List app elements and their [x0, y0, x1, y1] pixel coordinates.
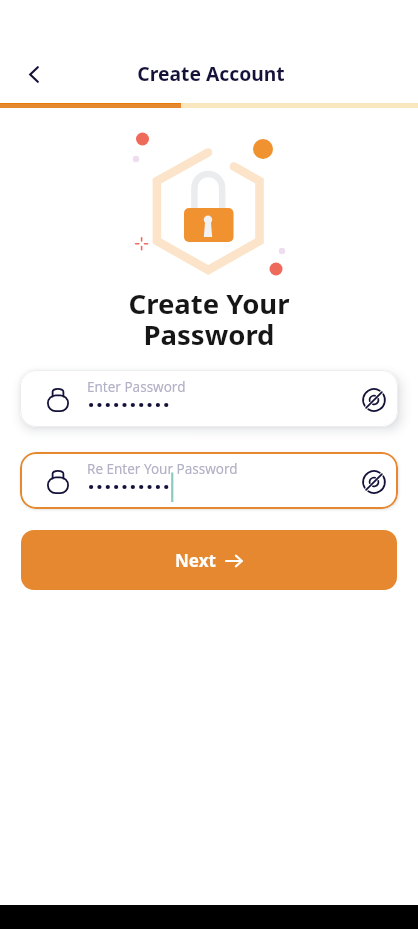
button[interactable]: Toggle password visibility [358, 466, 390, 498]
staticText: Re Enter Your Password [87, 460, 238, 478]
button[interactable]: Re Enter Your Password [20, 452, 398, 509]
staticText: Create Account [2, 60, 418, 86]
button[interactable]: Next [21, 530, 397, 590]
staticText: Next [175, 549, 216, 572]
button[interactable]: Enter Password [20, 370, 398, 427]
staticText: Create Your Password [0, 285, 418, 353]
staticText: Enter Password [87, 378, 186, 396]
button[interactable]: Back [11, 51, 57, 97]
button[interactable]: Toggle password visibility [358, 384, 390, 416]
